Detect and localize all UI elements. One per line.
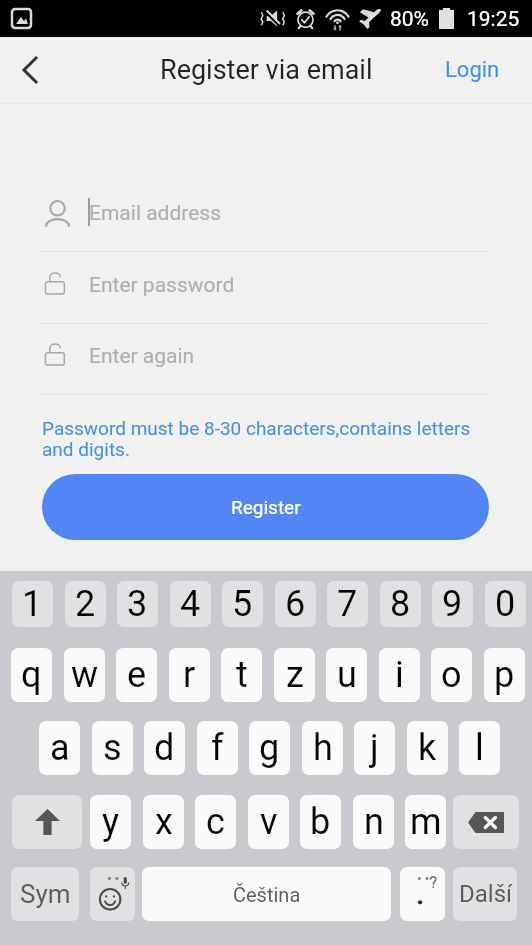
button[interactable]: z xyxy=(274,648,315,702)
button[interactable]: n xyxy=(353,795,394,849)
button[interactable]: b xyxy=(300,795,341,849)
staticText: Enter password xyxy=(89,273,235,298)
button[interactable]: p xyxy=(484,648,525,702)
staticText: 5 xyxy=(232,583,253,625)
button[interactable]: Sym xyxy=(11,867,79,921)
button[interactable]: Register xyxy=(42,474,489,540)
button[interactable]: Back xyxy=(0,40,60,100)
button[interactable]: f xyxy=(197,721,238,775)
staticText: h xyxy=(313,727,333,769)
button[interactable]: r xyxy=(169,648,210,702)
button[interactable]: 6 xyxy=(275,581,316,627)
button[interactable]: 2 xyxy=(65,581,106,627)
staticText: 6 xyxy=(285,583,306,625)
staticText: Email address xyxy=(89,201,222,226)
button[interactable]: s xyxy=(92,721,133,775)
staticText: b xyxy=(310,801,331,843)
staticText: w xyxy=(71,654,99,696)
staticText: Čeština xyxy=(233,883,301,906)
button[interactable]: m xyxy=(405,795,446,849)
staticText: Enter again xyxy=(89,344,195,369)
button[interactable]: 9 xyxy=(432,581,473,627)
staticText: Další xyxy=(459,880,512,908)
staticText: 0 xyxy=(495,583,516,625)
staticText: a xyxy=(50,727,70,769)
staticText: l xyxy=(475,727,484,769)
staticText: c xyxy=(206,801,225,843)
button[interactable] xyxy=(12,795,82,849)
button[interactable] xyxy=(453,795,519,849)
button[interactable]: Login xyxy=(445,57,500,83)
button[interactable]: a xyxy=(39,721,80,775)
staticText: z xyxy=(286,654,304,696)
staticText: 7 xyxy=(337,583,358,625)
staticText: Login xyxy=(445,57,500,83)
button[interactable]: 8 xyxy=(380,581,421,627)
staticText: 1 xyxy=(22,583,43,625)
button[interactable]: Enter again xyxy=(40,332,488,388)
staticText: n xyxy=(364,801,384,843)
button[interactable]: u xyxy=(326,648,367,702)
button[interactable] xyxy=(400,867,445,921)
button[interactable]: 7 xyxy=(327,581,368,627)
button[interactable]: o xyxy=(431,648,472,702)
button[interactable]: x xyxy=(143,795,184,849)
staticText: j xyxy=(370,727,379,769)
button[interactable]: Email address xyxy=(40,189,488,245)
staticText: p xyxy=(494,654,515,696)
button[interactable]: k xyxy=(407,721,448,775)
staticText: 8 xyxy=(390,583,411,625)
button[interactable]: l xyxy=(459,721,500,775)
staticText: s xyxy=(103,727,122,769)
staticText: q xyxy=(21,654,42,696)
button[interactable]: j xyxy=(354,721,395,775)
staticText: i xyxy=(395,654,404,696)
staticText: 3 xyxy=(127,583,148,625)
button[interactable]: 3 xyxy=(117,581,158,627)
staticText: d xyxy=(154,727,175,769)
staticText: e xyxy=(127,654,147,696)
button[interactable]: v xyxy=(248,795,289,849)
button[interactable]: q xyxy=(11,648,52,702)
staticText: Sym xyxy=(20,879,71,909)
staticText: u xyxy=(337,654,357,696)
staticText: Register xyxy=(231,496,301,518)
staticText: f xyxy=(211,727,224,769)
staticText: g xyxy=(259,727,280,769)
button[interactable]: g xyxy=(249,721,290,775)
staticText: m xyxy=(410,801,442,843)
button[interactable]: c xyxy=(195,795,236,849)
button[interactable]: w xyxy=(64,648,105,702)
staticText: t xyxy=(236,654,248,696)
button[interactable]: y xyxy=(90,795,131,849)
button[interactable]: Čeština xyxy=(142,867,391,921)
staticText: x xyxy=(155,801,173,843)
staticText: Register via email xyxy=(160,54,373,86)
staticText: y xyxy=(102,801,120,843)
button[interactable]: i xyxy=(379,648,420,702)
button[interactable]: h xyxy=(302,721,343,775)
staticText: Password must be 8-30 characters,contain… xyxy=(42,417,471,461)
staticText: 4 xyxy=(180,583,201,625)
staticText: k xyxy=(418,727,437,769)
button[interactable]: 4 xyxy=(170,581,211,627)
button[interactable]: d xyxy=(144,721,185,775)
button[interactable]: t xyxy=(221,648,262,702)
staticText: v xyxy=(260,801,278,843)
staticText: 9 xyxy=(442,583,463,625)
button[interactable]: 5 xyxy=(222,581,263,627)
staticText: 2 xyxy=(75,583,96,625)
button[interactable]: e xyxy=(116,648,157,702)
button[interactable]: 1 xyxy=(12,581,53,627)
staticText: 19:25 xyxy=(467,7,520,32)
staticText: r xyxy=(183,654,196,696)
staticText: o xyxy=(441,654,462,696)
button[interactable] xyxy=(90,867,135,921)
button[interactable]: 0 xyxy=(485,581,526,627)
button[interactable]: Další xyxy=(453,867,517,921)
staticText: 80% xyxy=(390,7,429,32)
button[interactable]: Enter password xyxy=(40,261,488,317)
